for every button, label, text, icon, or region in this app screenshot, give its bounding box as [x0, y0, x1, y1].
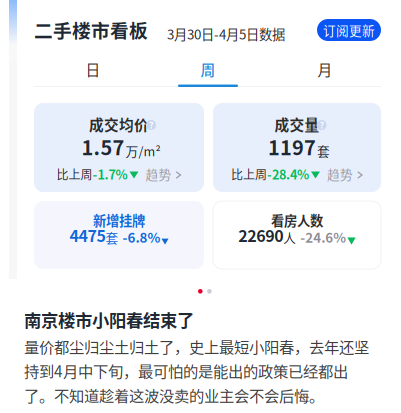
staticText: 新增挂牌	[93, 210, 145, 230]
staticText: -24.6%	[300, 227, 346, 247]
staticText: 4475	[69, 223, 105, 247]
staticText: 趋势	[327, 165, 353, 183]
button[interactable]: 新增挂牌	[34, 201, 204, 269]
staticText: 南京楼市小阳春结束了	[24, 307, 194, 332]
staticText: 人	[283, 228, 296, 246]
button[interactable]: 南京楼市小阳春结束了	[24, 307, 372, 403]
staticText: 比上周	[56, 165, 92, 183]
button[interactable]: 日	[35, 53, 151, 85]
staticText: ?	[319, 119, 323, 131]
staticText: 1.57	[81, 132, 124, 161]
staticText: 3月30日-4月5日数据	[167, 24, 285, 43]
staticText: 二手楼市看板	[34, 16, 148, 43]
button[interactable]: 成交均价	[34, 103, 204, 192]
staticText: 成交均价	[82, 113, 142, 135]
staticText: -28.4%	[267, 165, 309, 183]
staticText: 套	[317, 142, 330, 160]
staticText: 量价都尘归尘土归土了，史上最短小阳春，去年还坚持到4月中下旬，最可怕的是能出的政…	[24, 335, 369, 406]
staticText: 成交量	[267, 113, 312, 135]
staticText: 趋势	[145, 165, 171, 183]
button[interactable]: 看房人数	[213, 201, 381, 269]
staticText: -6.8%	[122, 227, 160, 247]
staticText: 成交量	[274, 113, 319, 135]
button[interactable]: 周	[150, 53, 266, 87]
staticText: 22690	[238, 223, 283, 247]
staticText: 订阅更新	[323, 21, 375, 39]
button[interactable]: 成交量	[213, 103, 381, 192]
staticText: 月	[317, 58, 332, 80]
button[interactable]: 订阅更新	[317, 19, 381, 41]
staticText: 周	[200, 58, 215, 80]
button[interactable]: 月	[267, 53, 383, 85]
staticText: ?	[149, 119, 153, 131]
staticText: 日	[85, 58, 100, 80]
staticText: 1197	[268, 132, 316, 161]
staticText: -1.7%	[92, 165, 127, 183]
staticText: 比上周	[231, 165, 267, 183]
staticText: 成交均价	[89, 113, 149, 135]
staticText: 万/m²	[125, 142, 160, 160]
staticText: 套	[105, 228, 118, 246]
staticText: 看房人数	[271, 210, 323, 230]
